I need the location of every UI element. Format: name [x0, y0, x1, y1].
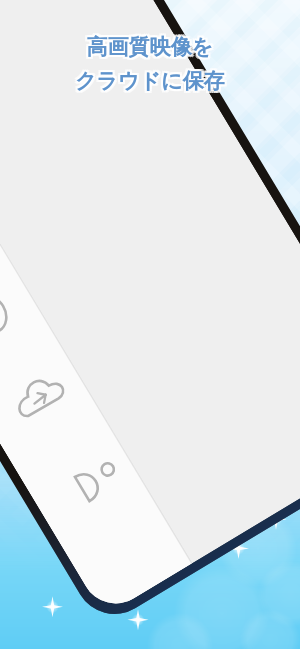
button[interactable]: 高画質映像をクラウドに保存 promo [0, 0, 300, 649]
